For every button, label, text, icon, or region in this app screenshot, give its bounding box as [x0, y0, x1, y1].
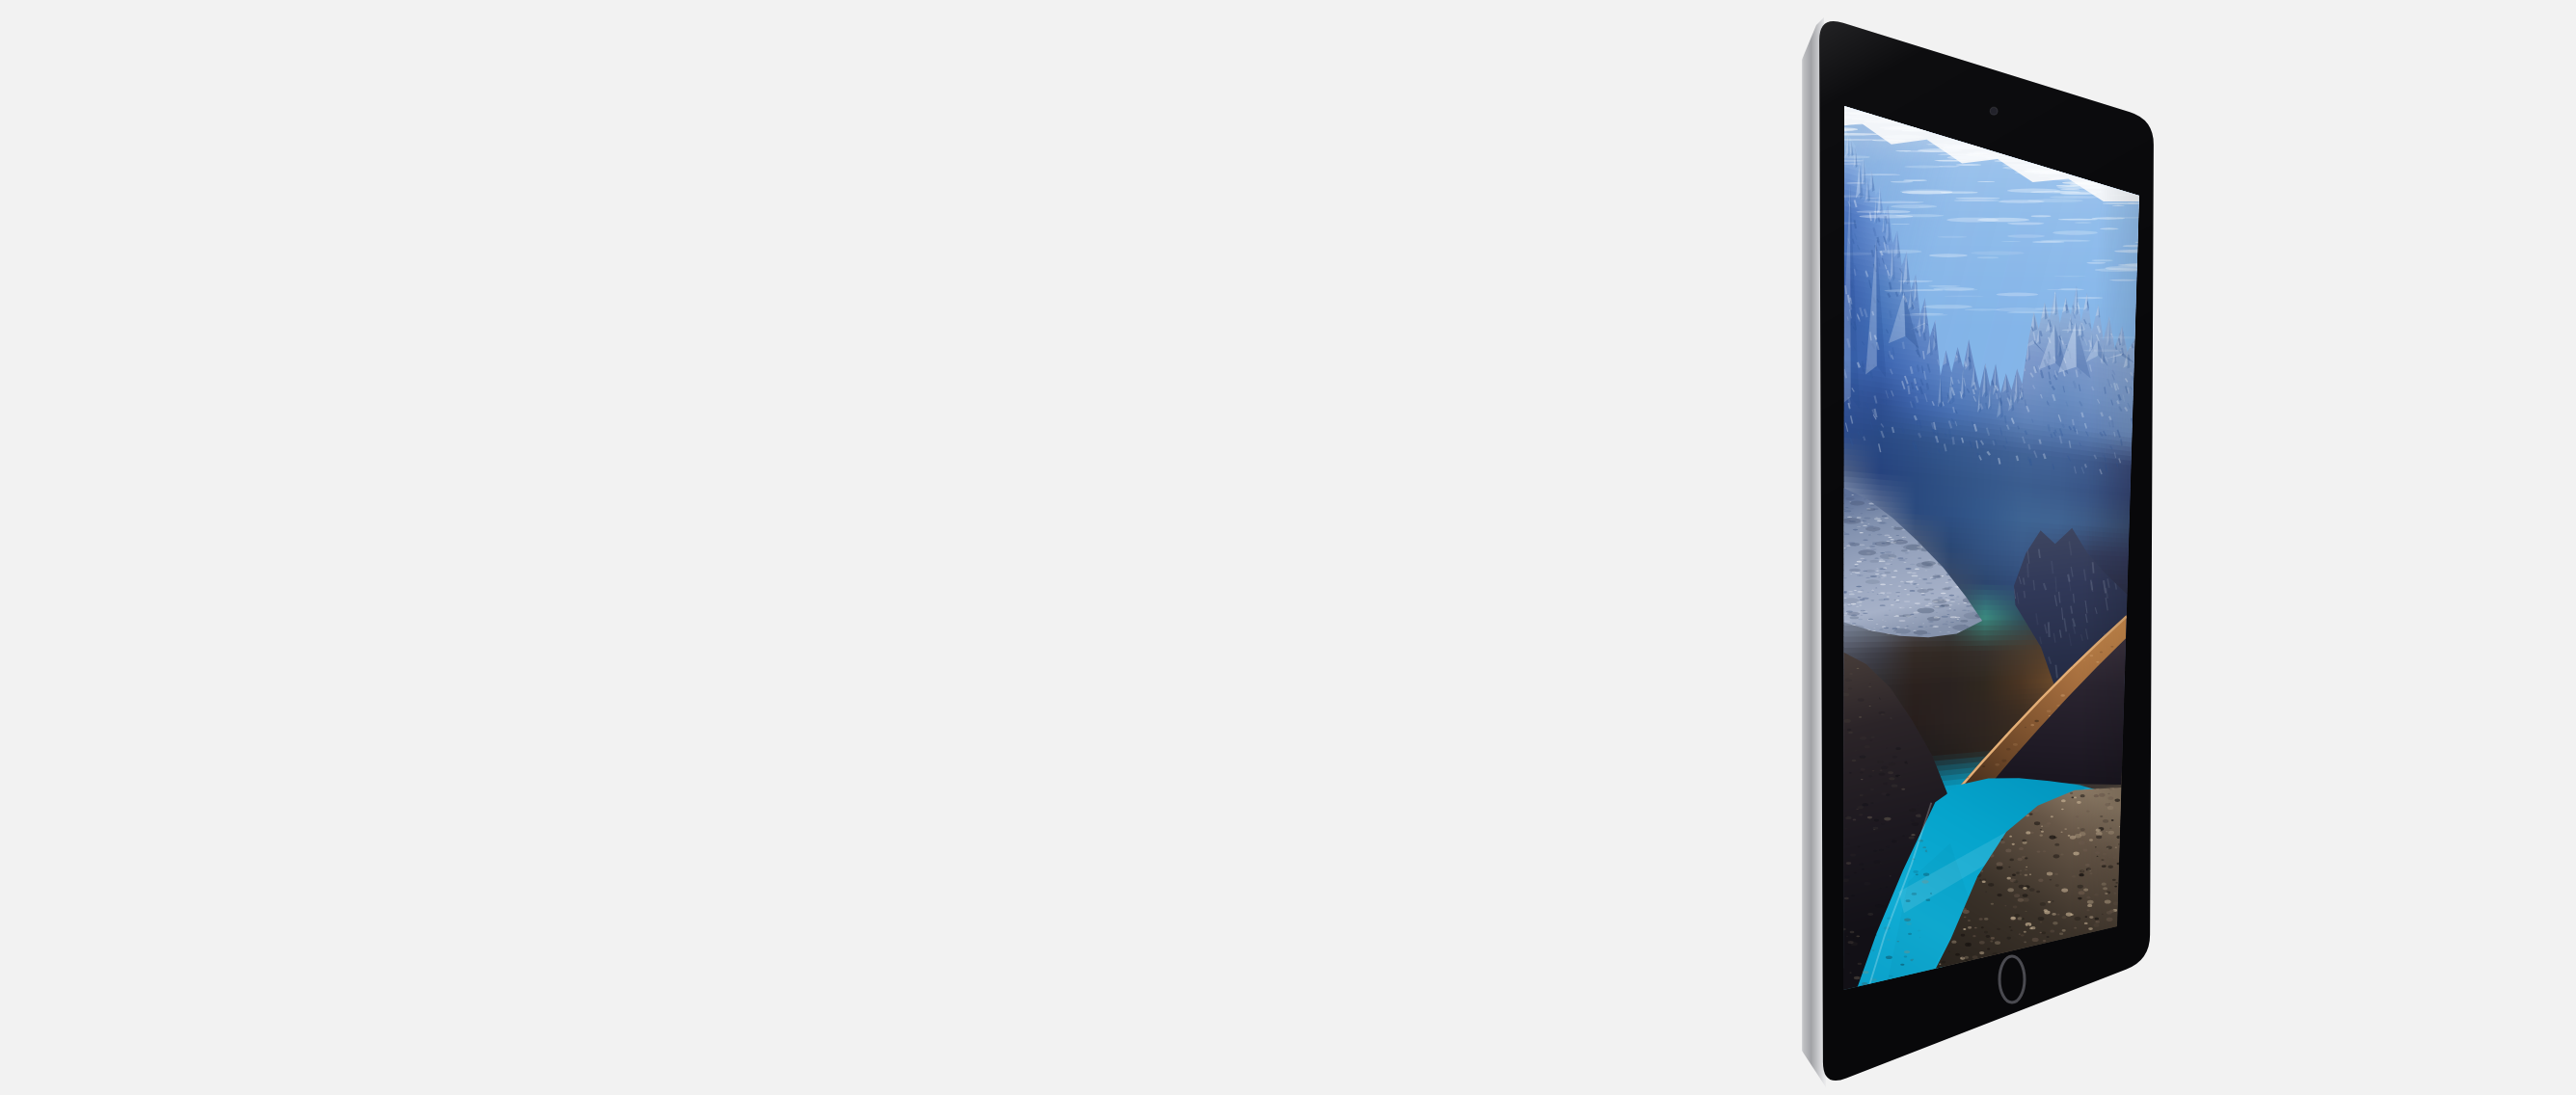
- button[interactable]: Tablet product photo: [0, 0, 2576, 1095]
